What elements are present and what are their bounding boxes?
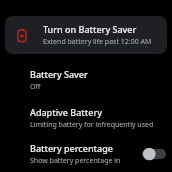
staticText: Adaptive Battery [30,106,102,118]
button[interactable]: Battery Saver [5,16,167,54]
other: Battery Saver [13,26,31,44]
staticText: Limiting battery for infrequently used a… [30,120,166,130]
button[interactable]: Battery Saver [0,68,172,92]
staticText: Battery percentage [30,142,113,154]
staticText: Turn on Battery Saver [43,23,137,35]
button[interactable]: Battery percentage toggle [142,147,166,161]
button[interactable]: Battery percentage [0,142,172,166]
staticText: Show battery percentage in status bar [30,156,136,166]
staticText: Off [30,82,41,92]
button[interactable]: Adaptive Battery [0,106,172,130]
staticText: Extend battery life past 12:00 AM [43,37,152,47]
staticText: Battery Saver [30,68,88,80]
